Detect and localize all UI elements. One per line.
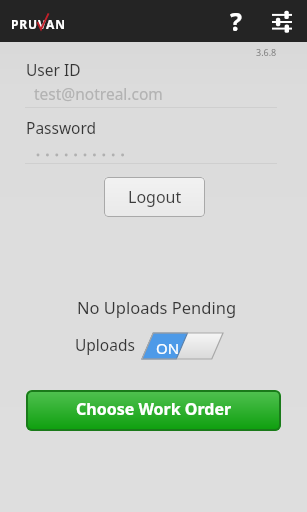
- staticText: Uploads: [75, 334, 135, 355]
- button[interactable]: Help: [218, 3, 254, 39]
- staticText: Password: [26, 117, 97, 138]
- staticText: test@notreal.com: [34, 83, 163, 104]
- button[interactable]: Settings: [272, 12, 292, 30]
- button[interactable]: Logout: [104, 177, 205, 217]
- staticText: 3.6.8: [256, 46, 277, 58]
- staticText: PRUVAN: [11, 16, 66, 32]
- staticText: ?: [230, 4, 242, 38]
- button[interactable]: Password field: [25, 135, 277, 164]
- button[interactable]: Choose Work Order: [26, 390, 281, 431]
- staticText: No Uploads Pending: [3, 296, 307, 318]
- staticText: ON: [156, 338, 180, 358]
- button[interactable]: User ID field: [25, 79, 277, 108]
- staticText: Logout: [128, 186, 182, 208]
- button[interactable]: ON: [142, 333, 223, 359]
- staticText: User ID: [26, 59, 81, 80]
- staticText: Choose Work Order: [76, 398, 232, 420]
